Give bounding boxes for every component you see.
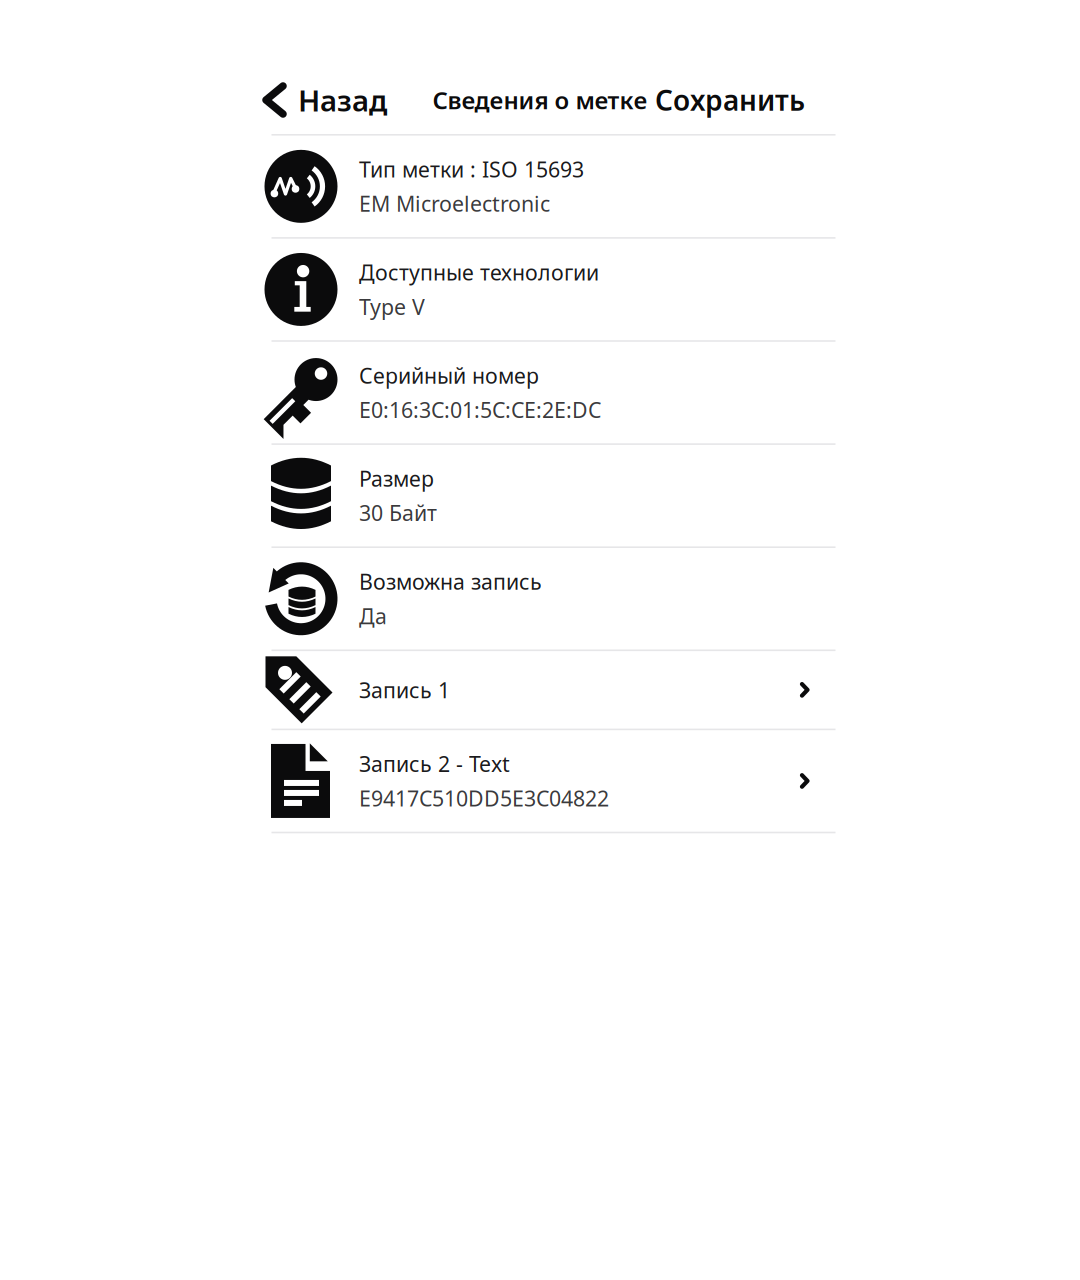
staticText: Сохранить <box>655 81 805 119</box>
staticText: Серийный номер <box>359 361 539 389</box>
button[interactable]: Доступные технологии <box>264 239 836 342</box>
staticText: Размер <box>359 464 434 493</box>
button[interactable]: Сохранить <box>655 81 836 119</box>
staticText: Запись 2 - Text <box>359 750 510 778</box>
staticText: Назад <box>298 80 387 119</box>
staticText: EM Microelectronic <box>359 189 550 218</box>
staticText: E9417C510DD5E3C04822 <box>359 784 609 812</box>
button[interactable]: Тип метки : ISO 15693 <box>264 136 836 239</box>
button[interactable]: Серийный номер <box>264 342 836 445</box>
staticText: Тип метки : ISO 15693 <box>359 155 584 183</box>
staticText: Да <box>359 602 387 630</box>
staticText: Возможна запись <box>359 567 542 596</box>
button[interactable]: Назад <box>264 80 387 119</box>
staticText: 30 Байт <box>359 499 437 527</box>
staticText: Доступные технологии <box>359 258 599 286</box>
staticText: Сведения о метке <box>432 84 647 116</box>
button[interactable]: Запись 2 - Text <box>264 730 836 833</box>
staticText: Запись 1 <box>359 676 450 704</box>
button[interactable]: Размер <box>264 445 836 548</box>
staticText: E0:16:3C:01:5C:CE:2E:DC <box>359 395 601 424</box>
button[interactable]: Возможна запись <box>264 548 836 651</box>
staticText: Type V <box>359 292 425 321</box>
button[interactable]: Запись 1 <box>264 651 836 730</box>
